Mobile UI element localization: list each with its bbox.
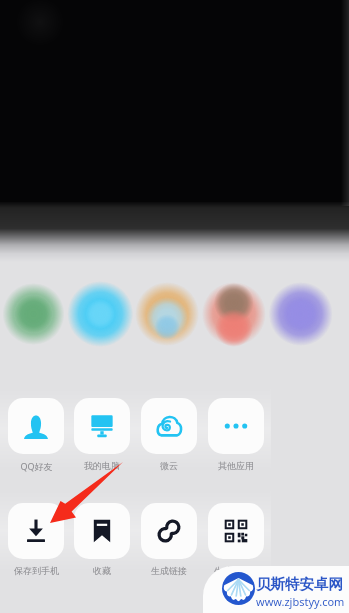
other: 生成二维码 <box>223 518 249 544</box>
button[interactable]: 生成二维码 <box>208 503 264 576</box>
other: 其他应用 <box>223 413 249 439</box>
other: 生成链接 <box>156 518 182 544</box>
staticText: 生成二维码 <box>214 565 259 576</box>
other: 微云 <box>156 413 182 439</box>
other: 我的电脑 <box>89 413 115 439</box>
staticText: 我的电脑 <box>84 460 120 471</box>
other: QQ好友 <box>23 413 49 439</box>
staticText: www.zjbstyy.com <box>256 594 345 609</box>
other: 收藏 <box>89 518 115 544</box>
button[interactable]: 保存到手机 <box>8 503 64 576</box>
button[interactable]: 其他应用 <box>208 398 264 471</box>
button[interactable]: 生成链接 <box>141 503 197 576</box>
staticText: 生成链接 <box>151 565 187 576</box>
button[interactable]: 微云 <box>141 398 197 471</box>
button[interactable]: 我的电脑 <box>74 398 130 471</box>
button[interactable]: 收藏 <box>74 503 130 576</box>
staticText: QQ好友 <box>20 460 53 472</box>
staticText: 保存到手机 <box>14 565 59 576</box>
staticText: 收藏 <box>93 565 111 576</box>
other: 保存到手机 <box>23 518 49 544</box>
button[interactable]: QQ好友 <box>8 398 64 472</box>
staticText: 贝斯特安卓网 <box>256 575 343 593</box>
staticText: 其他应用 <box>218 460 254 471</box>
staticText: 微云 <box>160 460 178 471</box>
